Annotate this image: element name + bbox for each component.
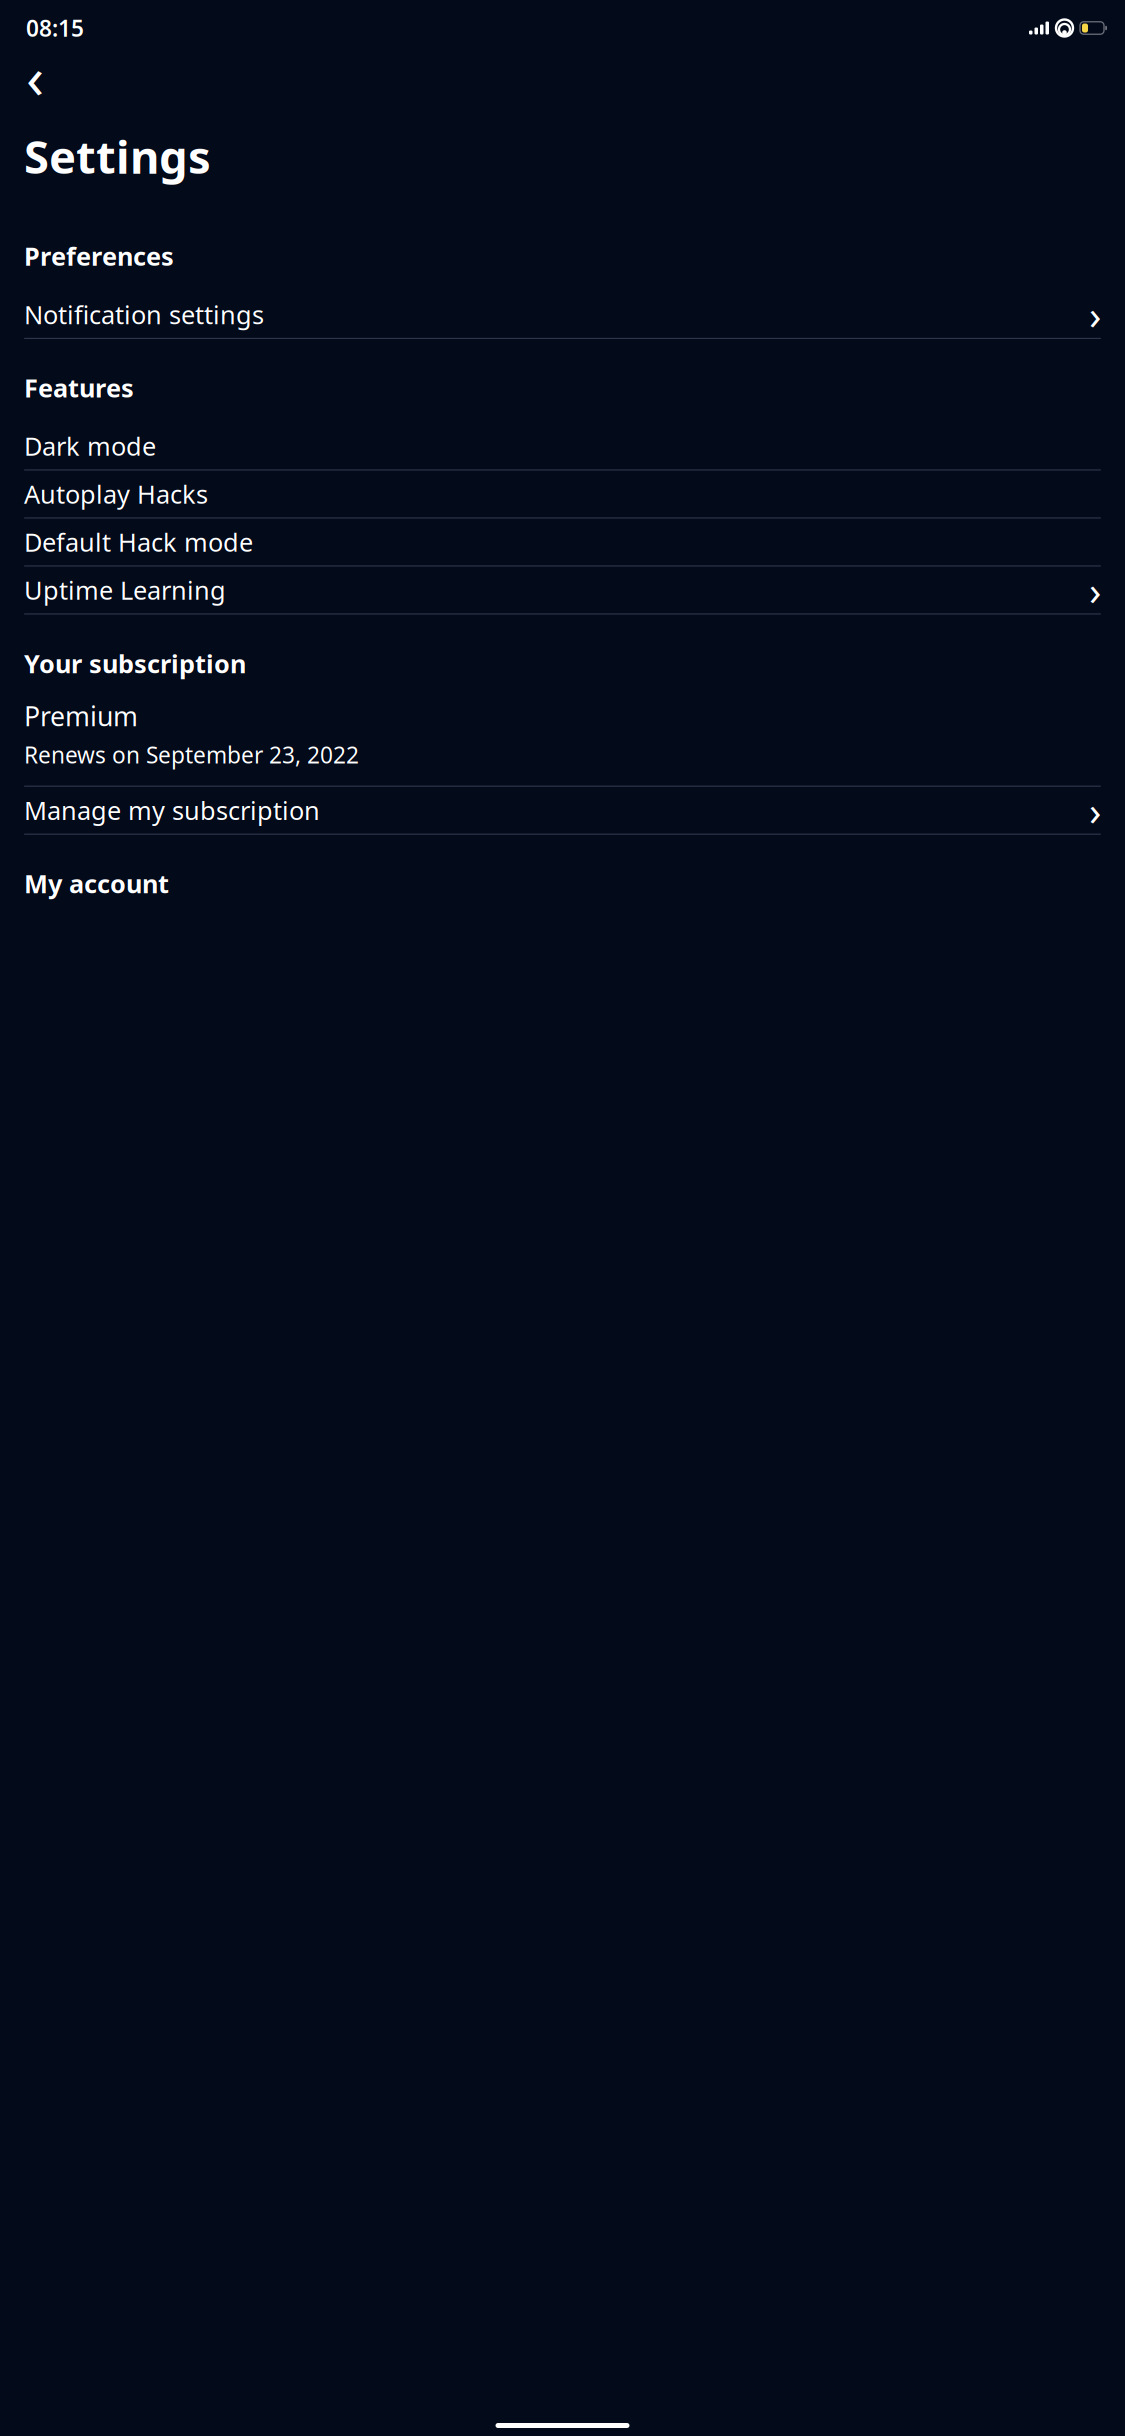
staticText: ›	[1089, 563, 1101, 616]
staticText: My account	[24, 867, 169, 900]
staticText: Renews on September 23, 2022	[24, 739, 359, 770]
button[interactable]: Autoplay Hacks	[24, 470, 1101, 517]
button[interactable]: Manage my subscription	[24, 787, 1101, 834]
button[interactable]: Uptime Learning	[24, 566, 1101, 613]
staticText: Dark mode	[24, 429, 156, 463]
staticText: Premium	[24, 698, 138, 733]
staticText: ›	[1089, 288, 1101, 341]
staticText: Notification settings	[24, 297, 264, 331]
button[interactable]: Back	[13, 54, 57, 98]
button[interactable]: Default Hack mode	[24, 518, 1101, 565]
button[interactable]: Dark mode	[24, 422, 1101, 469]
staticText: Features	[24, 371, 134, 404]
staticText: Autoplay Hacks	[24, 477, 208, 511]
staticText: Settings	[24, 126, 211, 186]
button[interactable]: Notification settings	[24, 291, 1101, 338]
staticText: Preferences	[24, 239, 174, 273]
staticText: Manage my subscription	[24, 793, 320, 827]
staticText: 08:15	[26, 13, 84, 43]
staticText: Uptime Learning	[24, 573, 226, 607]
staticText: Your subscription	[24, 646, 246, 680]
staticText: ›	[1089, 784, 1101, 837]
staticText: ‹	[26, 37, 44, 115]
staticText: Default Hack mode	[24, 525, 253, 559]
